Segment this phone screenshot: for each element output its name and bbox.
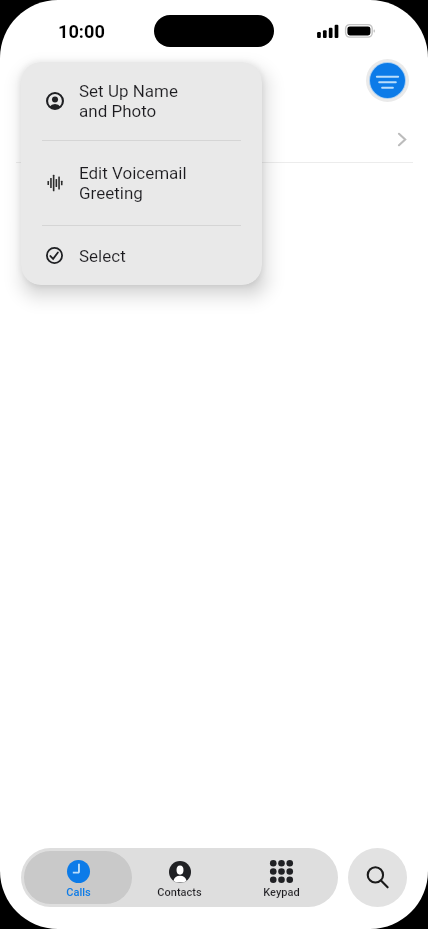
button[interactable]: Keypad <box>227 851 335 904</box>
staticText: 10:00 <box>58 21 105 42</box>
staticText: Contacts <box>157 886 202 899</box>
button[interactable]: Search <box>348 848 407 907</box>
button[interactable]: Filter calls <box>370 63 405 98</box>
staticText: Calls <box>66 886 91 899</box>
button[interactable]: Contacts <box>125 851 233 904</box>
staticText: Keypad <box>263 886 300 899</box>
button[interactable]: Voicemail <box>0 116 428 162</box>
button[interactable]: Edit Voicemail Greeting <box>21 141 262 225</box>
button[interactable]: Set Up Name and Photo <box>21 62 262 140</box>
button[interactable]: Calls <box>24 851 132 904</box>
button[interactable]: Select <box>21 226 262 285</box>
staticText: Set Up Name and Photo <box>79 81 178 122</box>
staticText: Select <box>79 246 126 266</box>
staticText: Edit Voicemail Greeting <box>79 163 187 204</box>
